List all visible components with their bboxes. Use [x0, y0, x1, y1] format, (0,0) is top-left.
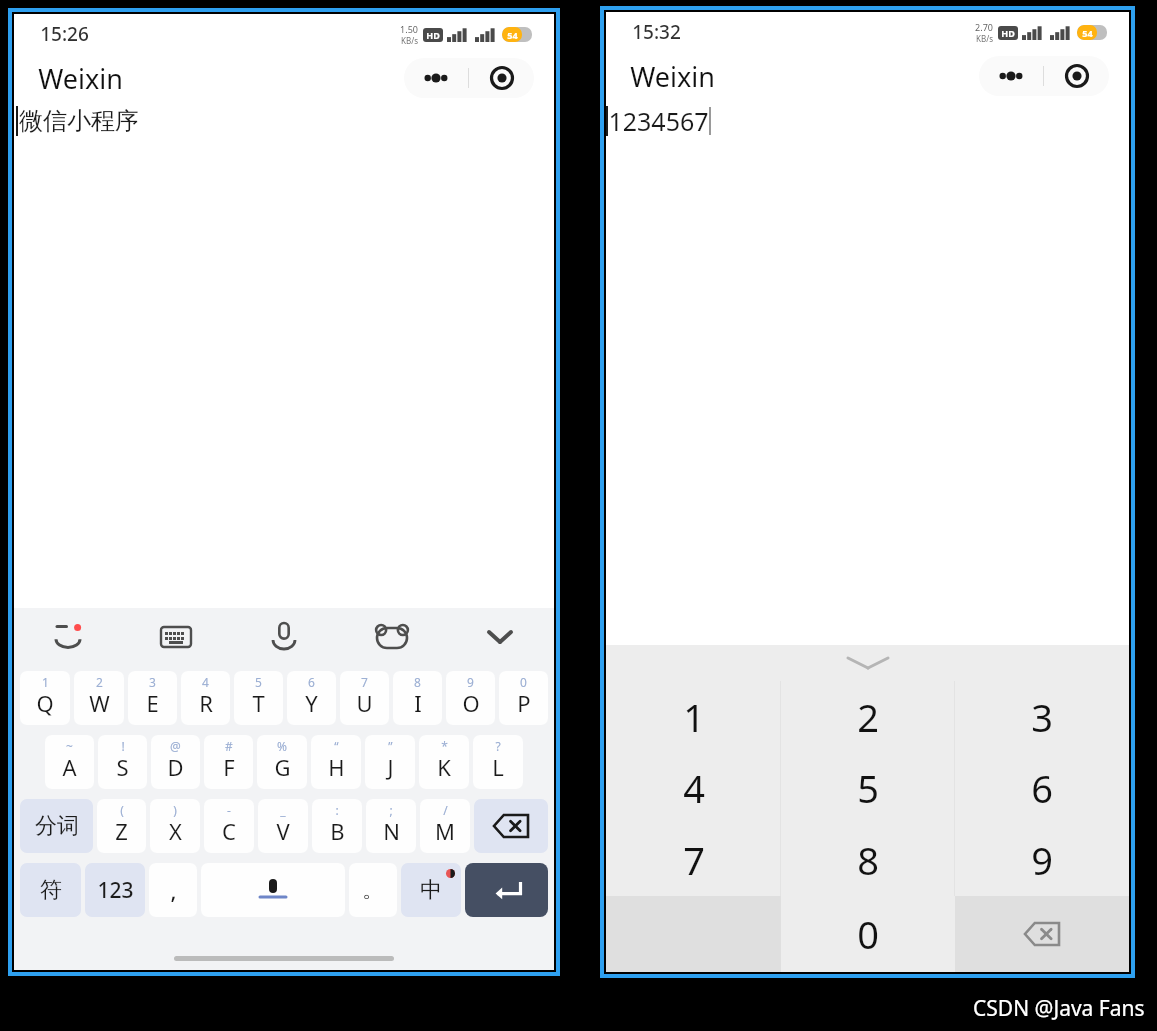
staticText: 54	[507, 29, 518, 41]
staticText: X	[169, 816, 182, 846]
staticText: P	[517, 688, 531, 718]
staticText: 0	[520, 674, 527, 690]
button[interactable]: 8	[393, 671, 442, 725]
button[interactable]: ~	[45, 735, 94, 789]
staticText: R	[199, 688, 213, 718]
button[interactable]: down	[446, 608, 554, 666]
button[interactable]: 3	[128, 671, 177, 725]
button[interactable]: du	[338, 608, 446, 666]
button[interactable]: 2	[74, 671, 124, 725]
button[interactable]: ?	[473, 735, 523, 789]
button[interactable]: Hide keyboard	[606, 645, 1129, 681]
button[interactable]: ”	[365, 735, 415, 789]
staticText: C	[222, 816, 236, 846]
button[interactable]: 4	[181, 671, 230, 725]
button[interactable]: emoji	[14, 608, 122, 666]
button[interactable]: 123	[85, 863, 145, 917]
staticText: #	[225, 738, 233, 754]
staticText: G	[274, 752, 291, 782]
button[interactable]: 0	[781, 896, 955, 972]
staticText: “	[334, 738, 339, 754]
button[interactable]: *	[419, 735, 469, 789]
button[interactable]: 7	[340, 671, 389, 725]
staticText: O	[462, 688, 480, 718]
button[interactable]: Voice input	[201, 863, 345, 917]
button[interactable]: 5	[781, 752, 955, 824]
staticText: -	[227, 802, 231, 818]
staticText: 微信小程序	[19, 106, 139, 136]
button[interactable]: 。	[349, 863, 397, 917]
button[interactable]: Close	[469, 58, 534, 98]
staticText: I	[414, 688, 422, 718]
button[interactable]: 1	[606, 681, 781, 752]
button[interactable]: @	[151, 735, 200, 789]
staticText: 5	[255, 674, 262, 690]
staticText: KB/s	[976, 33, 993, 44]
button[interactable]: ,	[149, 863, 197, 917]
button[interactable]: 5	[234, 671, 283, 725]
button[interactable]: _	[258, 799, 308, 853]
staticText: HD	[426, 29, 440, 41]
staticText: Z	[115, 816, 128, 846]
button[interactable]: (	[97, 799, 146, 853]
staticText: 6	[308, 674, 315, 690]
button[interactable]: Backspace	[474, 799, 548, 853]
staticText: 符	[40, 876, 62, 904]
staticText: H	[328, 752, 345, 782]
staticText: K	[437, 752, 451, 782]
button[interactable]: )	[150, 799, 200, 853]
button[interactable]: ;	[366, 799, 416, 853]
staticText: ;	[389, 802, 393, 818]
button[interactable]: 9	[446, 671, 495, 725]
staticText: ~	[66, 738, 73, 754]
staticText: 3	[149, 674, 156, 690]
staticText: Weixin	[38, 60, 123, 97]
button[interactable]: 分词	[20, 799, 93, 853]
button[interactable]: “	[311, 735, 361, 789]
button[interactable]: 2	[781, 681, 955, 752]
staticText: 1	[42, 674, 49, 690]
button[interactable]: 3	[955, 681, 1129, 752]
button[interactable]: :	[312, 799, 362, 853]
button[interactable]: 6	[955, 752, 1129, 824]
button[interactable]: #	[204, 735, 253, 789]
button[interactable]: 1	[20, 671, 70, 725]
staticText: N	[383, 816, 400, 846]
button[interactable]: 8	[781, 824, 955, 896]
staticText: 8	[857, 834, 879, 886]
staticText: _	[280, 802, 286, 818]
button[interactable]: 4	[606, 752, 781, 824]
button[interactable]: 9	[955, 824, 1129, 896]
button[interactable]: 6	[287, 671, 336, 725]
staticText: !	[121, 738, 125, 754]
button[interactable]: More	[979, 56, 1043, 96]
staticText: ?	[495, 738, 501, 754]
staticText: 1234567	[608, 104, 709, 138]
button[interactable]: 7	[606, 824, 781, 896]
staticText: 7	[683, 834, 705, 886]
button[interactable]: !	[98, 735, 147, 789]
staticText: 3	[1031, 691, 1053, 743]
staticText: /	[443, 802, 448, 818]
staticText: Weixin	[630, 58, 715, 95]
button[interactable]: Enter	[465, 863, 548, 917]
staticText: 。	[362, 876, 384, 904]
staticText: B	[330, 816, 345, 846]
button[interactable]: 中	[401, 863, 461, 917]
staticText: :	[335, 802, 339, 818]
button[interactable]: mic	[230, 608, 338, 666]
button[interactable]: kb	[122, 608, 230, 666]
button[interactable]: Backspace	[955, 896, 1129, 972]
button[interactable]: %	[257, 735, 307, 789]
button[interactable]: -	[204, 799, 254, 853]
button[interactable]: 0	[499, 671, 548, 725]
staticText: E	[146, 688, 159, 718]
staticText: L	[492, 752, 504, 782]
button[interactable]: 符	[20, 863, 81, 917]
button[interactable]: Close	[1044, 56, 1109, 96]
staticText: 分词	[35, 812, 79, 840]
button[interactable]: /	[420, 799, 470, 853]
button[interactable]: More	[404, 58, 468, 98]
staticText: @	[170, 738, 181, 754]
